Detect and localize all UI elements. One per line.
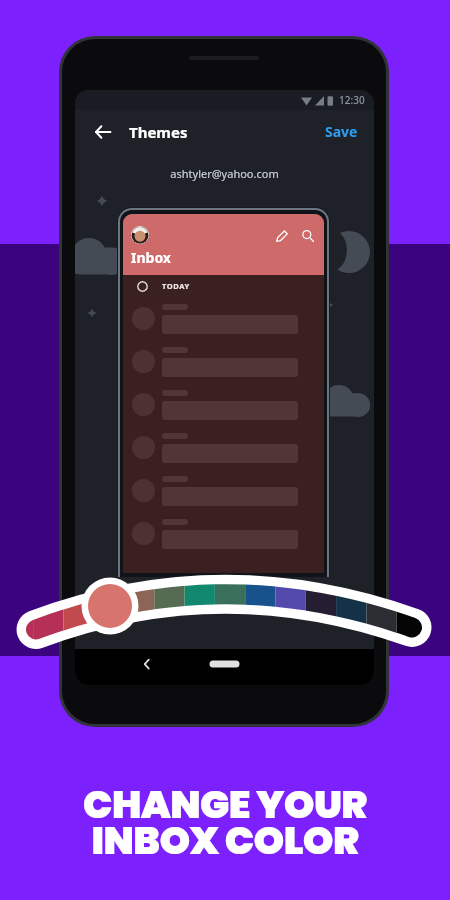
button[interactable]: Save <box>321 118 362 145</box>
button[interactable]: Compose <box>273 227 290 244</box>
staticText: Inbox <box>131 248 171 267</box>
staticText: Themes <box>129 122 188 142</box>
staticText: CHANGE YOUR <box>0 777 450 832</box>
staticText: 12:30 <box>339 93 365 107</box>
staticText: Save <box>325 122 358 141</box>
staticText: ashtyler@yahoo.com <box>75 166 374 181</box>
staticText: TODAY <box>162 281 190 291</box>
staticText: INBOX COLOR <box>0 813 450 868</box>
button[interactable]: Back <box>89 118 117 146</box>
button[interactable]: Search <box>299 227 316 244</box>
